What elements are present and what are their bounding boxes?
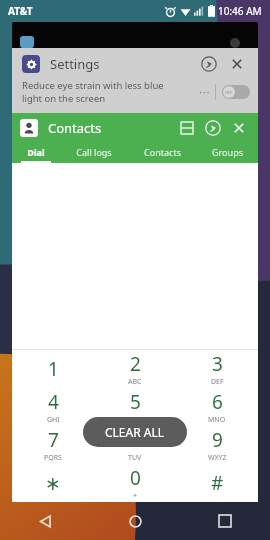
button[interactable]: Close Contacts — [228, 117, 250, 139]
button[interactable]: 2 — [94, 350, 176, 388]
button[interactable]: # — [176, 464, 258, 502]
button[interactable]: Groups — [196, 143, 258, 163]
staticText: 6 — [212, 389, 223, 415]
staticText: ⋯ — [199, 86, 210, 99]
button[interactable]: 4 — [12, 388, 94, 426]
staticText: WXYZ — [208, 453, 227, 463]
button[interactable]: Back — [0, 502, 90, 540]
staticText: Contacts — [48, 119, 102, 137]
staticText: 3 — [212, 351, 223, 377]
staticText: 8 — [130, 427, 141, 453]
staticText: ∗ — [45, 472, 61, 494]
staticText: 10:46 AM — [218, 4, 262, 18]
button[interactable]: 7 — [12, 426, 94, 464]
button[interactable]: 8 — [94, 426, 176, 464]
button[interactable]: Pin app — [202, 117, 224, 139]
button[interactable]: Split screen — [176, 117, 198, 139]
staticText: Call logs — [76, 146, 112, 158]
button[interactable]: 6 — [176, 388, 258, 426]
staticText: JKL — [130, 415, 140, 425]
button[interactable]: Call logs — [60, 143, 128, 163]
staticText: 0 — [130, 465, 141, 491]
button[interactable]: Dial — [12, 143, 60, 163]
staticText: + — [133, 491, 138, 501]
button[interactable]: 1 — [12, 350, 94, 388]
button[interactable]: Blue light filter toggle — [222, 85, 250, 99]
button[interactable]: Home — [90, 502, 180, 540]
button[interactable]: 9 — [176, 426, 258, 464]
button[interactable]: 5 — [94, 388, 176, 426]
staticText: 2 — [130, 351, 141, 377]
staticText: Contacts — [144, 146, 181, 158]
staticText: CLEAR ALL — [105, 424, 165, 440]
staticText: Groups — [212, 146, 243, 158]
staticText: Reduce eye strain with less blue light o… — [22, 79, 182, 105]
staticText: DEF — [211, 377, 224, 387]
button[interactable]: ∗ — [12, 464, 94, 502]
button[interactable]: Settings — [12, 48, 258, 113]
button[interactable]: Recent apps — [180, 502, 270, 540]
staticText: ABC — [128, 377, 142, 387]
staticText: Settings — [50, 55, 100, 73]
staticText: GHI — [47, 415, 60, 425]
button[interactable]: Contacts — [12, 113, 258, 163]
staticText: 1 — [48, 356, 59, 382]
button[interactable] — [12, 22, 258, 48]
button[interactable]: 3 — [176, 350, 258, 388]
button[interactable]: CLEAR ALL — [83, 417, 187, 447]
button[interactable]: Close Settings — [226, 53, 248, 75]
staticText: 7 — [48, 427, 59, 453]
button[interactable]: Pin app — [198, 53, 220, 75]
button[interactable]: 0 — [94, 464, 176, 502]
staticText: PQRS — [44, 453, 62, 463]
button[interactable]: Contacts — [128, 143, 196, 163]
staticText: Dial — [27, 146, 45, 158]
staticText: # — [211, 470, 224, 496]
staticText: AT&T — [8, 4, 33, 18]
staticText: MNO — [208, 415, 226, 425]
staticText: 9 — [212, 427, 223, 453]
staticText: TUV — [128, 453, 142, 463]
staticText: 5 — [130, 389, 141, 415]
staticText: OFF — [225, 90, 233, 95]
staticText: 4 — [48, 389, 59, 415]
